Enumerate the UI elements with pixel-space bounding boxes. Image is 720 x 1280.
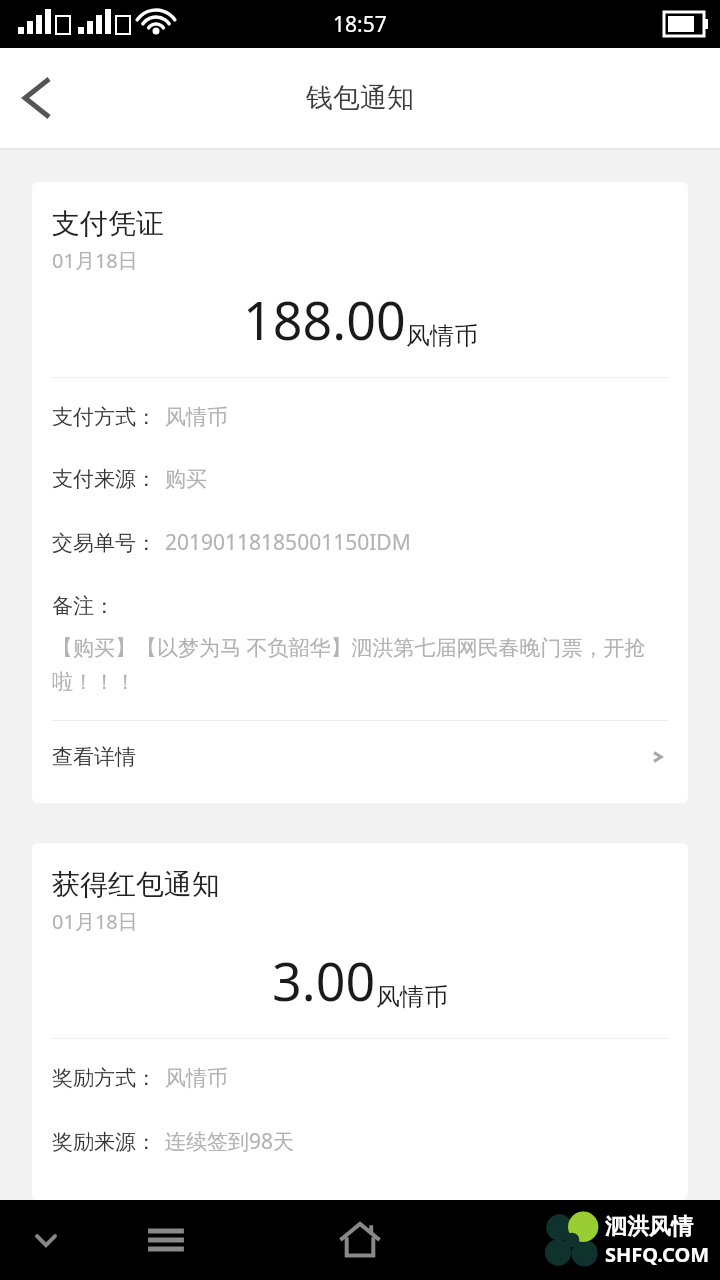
staticText: 支付来源：: [52, 466, 157, 492]
staticText: 备注：: [52, 593, 115, 619]
button[interactable]: 查看详情: [52, 721, 668, 793]
staticText: 泗洪风情: [605, 1213, 693, 1241]
staticText: 01月18日: [52, 908, 138, 935]
staticText: SHFQ.COM: [605, 1241, 710, 1268]
button[interactable]: 获得红包通知: [32, 843, 688, 1200]
staticText: 奖励来源：: [52, 1129, 157, 1155]
staticText: 风情币: [165, 404, 228, 430]
staticText: 【购买】【以梦为马 不负韶华】泗洪第七届网民春晚门票，开抢啦！！！: [52, 633, 668, 696]
staticText: 钱包通知: [306, 81, 414, 115]
button[interactable]: Back: [0, 60, 76, 136]
staticText: 风情币: [406, 321, 478, 351]
staticText: 风情币: [376, 982, 448, 1012]
staticText: 奖励方式：: [52, 1065, 157, 1091]
staticText: 获得红包通知: [52, 867, 220, 902]
button[interactable]: 支付凭证: [32, 182, 688, 803]
button[interactable]: Menu: [134, 1208, 198, 1272]
staticText: 交易单号：: [52, 530, 157, 556]
staticText: 支付凭证: [52, 206, 164, 241]
button[interactable]: Home: [325, 1205, 395, 1275]
staticText: 188.00: [243, 284, 406, 355]
staticText: 支付方式：: [52, 404, 157, 430]
staticText: 连续签到98天: [165, 1127, 295, 1156]
staticText: 01月18日: [52, 247, 138, 274]
staticText: 购买: [165, 466, 207, 492]
staticText: 18:57: [333, 10, 387, 39]
staticText: 查看详情: [52, 744, 136, 770]
staticText: 风情币: [165, 1065, 228, 1091]
staticText: 3.00: [272, 945, 376, 1016]
staticText: 20190118185001150IDM: [165, 528, 411, 557]
button[interactable]: Collapse: [14, 1208, 78, 1272]
